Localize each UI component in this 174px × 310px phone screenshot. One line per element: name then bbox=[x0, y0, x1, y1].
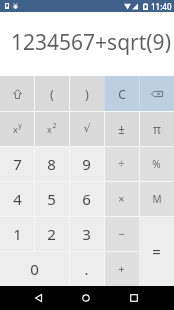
staticText: 9 bbox=[82, 154, 91, 174]
staticText: 8 bbox=[47, 154, 56, 174]
staticText: √ bbox=[83, 122, 91, 135]
staticText: % bbox=[152, 157, 161, 171]
button[interactable]: √ bbox=[69, 111, 104, 146]
staticText: x bbox=[13, 123, 18, 135]
button[interactable]: 6 bbox=[69, 181, 104, 216]
staticText: C bbox=[118, 86, 126, 102]
button[interactable]: ( bbox=[34, 76, 69, 111]
button[interactable]: M bbox=[139, 181, 174, 216]
button[interactable]: 1 bbox=[0, 216, 34, 251]
button[interactable]: ± bbox=[104, 111, 139, 146]
button[interactable]: 3 bbox=[69, 216, 104, 251]
staticText: × bbox=[118, 191, 125, 206]
staticText: y bbox=[18, 121, 22, 131]
staticText: − bbox=[118, 226, 125, 241]
staticText: + bbox=[118, 261, 125, 276]
button[interactable]: C bbox=[104, 76, 139, 111]
button[interactable]: x bbox=[0, 111, 34, 146]
staticText: 6 bbox=[82, 189, 91, 209]
button[interactable]: π bbox=[139, 111, 174, 146]
button[interactable]: Home bbox=[62, 286, 110, 310]
button[interactable]: × bbox=[104, 181, 139, 216]
staticText: 2 bbox=[47, 224, 56, 244]
staticText: ÷ bbox=[118, 156, 125, 171]
staticText: 0 bbox=[30, 259, 39, 279]
button[interactable]: − bbox=[104, 216, 139, 251]
staticText: 5 bbox=[47, 189, 56, 209]
button[interactable]: Recent apps bbox=[110, 286, 158, 310]
button[interactable]: 5 bbox=[34, 181, 69, 216]
staticText: ± bbox=[118, 121, 125, 137]
button[interactable]: 8 bbox=[34, 146, 69, 181]
staticText: 1 bbox=[13, 224, 22, 244]
button[interactable]: 7 bbox=[0, 146, 34, 181]
staticText: ) bbox=[85, 85, 89, 103]
staticText: 4 bbox=[13, 189, 22, 209]
staticText: M bbox=[152, 192, 162, 206]
button[interactable]: . bbox=[69, 251, 104, 286]
button[interactable]: ÷ bbox=[104, 146, 139, 181]
button[interactable]: x bbox=[34, 111, 69, 146]
button[interactable]: Delete bbox=[139, 76, 174, 111]
button[interactable]: 9 bbox=[69, 146, 104, 181]
staticText: x bbox=[47, 123, 52, 135]
staticText: 1234567+sqrt(9) bbox=[11, 28, 171, 57]
staticText: 11:40 bbox=[151, 1, 172, 12]
staticText: ( bbox=[50, 85, 54, 103]
button[interactable]: 2 bbox=[34, 216, 69, 251]
staticText: 3 bbox=[82, 224, 91, 244]
staticText: 2 bbox=[52, 121, 57, 131]
button[interactable]: Back bbox=[14, 286, 62, 310]
staticText: . bbox=[84, 259, 89, 279]
staticText: 7 bbox=[13, 154, 22, 174]
button[interactable]: 4 bbox=[0, 181, 34, 216]
button[interactable]: Equals bbox=[139, 216, 174, 286]
staticText: = bbox=[152, 241, 161, 261]
staticText: π bbox=[153, 121, 161, 137]
button[interactable]: + bbox=[104, 251, 139, 286]
button[interactable]: 0 bbox=[0, 251, 69, 286]
button[interactable]: % bbox=[139, 146, 174, 181]
button[interactable]: ) bbox=[69, 76, 104, 111]
button[interactable]: Shift bbox=[0, 76, 34, 111]
